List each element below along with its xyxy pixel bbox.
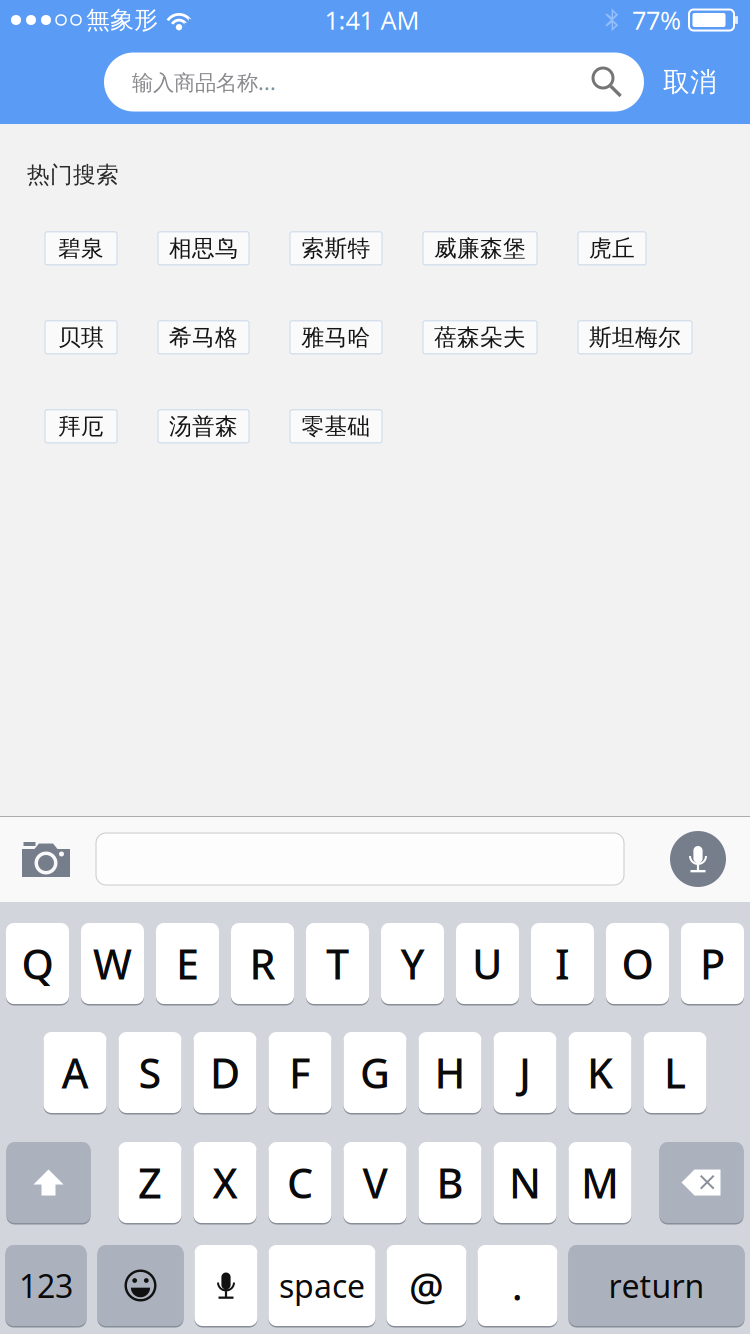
staticText: E bbox=[176, 936, 199, 991]
button[interactable]: 希马格 bbox=[158, 321, 249, 354]
staticText: V bbox=[362, 1155, 387, 1210]
staticText: 输入商品名称... bbox=[132, 68, 276, 96]
button[interactable]: 蓓森朵夫 bbox=[423, 321, 537, 354]
staticText: C bbox=[287, 1155, 313, 1210]
staticText: 虎丘 bbox=[589, 234, 635, 262]
button[interactable]: L bbox=[643, 1032, 706, 1113]
button[interactable]: 雅马哈 bbox=[290, 321, 382, 354]
staticText: U bbox=[472, 936, 503, 991]
staticText: O bbox=[621, 936, 653, 991]
button[interactable]: 零基础 bbox=[290, 410, 382, 443]
button[interactable]: R bbox=[231, 923, 294, 1004]
staticText: B bbox=[436, 1155, 463, 1210]
staticText: 雅马哈 bbox=[301, 323, 370, 351]
button[interactable]: 取消 bbox=[654, 60, 726, 104]
staticText: 贝琪 bbox=[58, 323, 104, 351]
button[interactable]: F bbox=[268, 1032, 331, 1113]
button[interactable]: S bbox=[118, 1032, 181, 1113]
button[interactable]: Y bbox=[381, 923, 444, 1004]
staticText: D bbox=[210, 1045, 240, 1100]
staticText: 相思鸟 bbox=[169, 234, 238, 262]
button[interactable]: Shift bbox=[6, 1142, 90, 1223]
button[interactable]: U bbox=[456, 923, 519, 1004]
staticText: 汤普森 bbox=[169, 412, 238, 440]
staticText: . bbox=[512, 1260, 523, 1311]
button[interactable]: V bbox=[343, 1142, 406, 1223]
button[interactable]: W bbox=[81, 923, 144, 1004]
staticText: M bbox=[581, 1155, 619, 1210]
button[interactable]: Delete bbox=[659, 1142, 743, 1223]
staticText: 無象形 bbox=[86, 5, 158, 35]
button[interactable]: Camera bbox=[20, 839, 72, 879]
button[interactable]: P bbox=[681, 923, 744, 1004]
staticText: 拜厄 bbox=[58, 412, 104, 440]
button[interactable]: 123 bbox=[5, 1245, 86, 1326]
staticText: R bbox=[249, 936, 275, 991]
button[interactable]: G bbox=[343, 1032, 406, 1113]
staticText: L bbox=[664, 1045, 686, 1100]
staticText: I bbox=[555, 936, 570, 991]
staticText: 取消 bbox=[663, 66, 717, 98]
button[interactable]: 碧泉 bbox=[45, 232, 117, 265]
staticText: A bbox=[61, 1045, 88, 1100]
staticText: W bbox=[93, 936, 132, 991]
button[interactable]: Dictation bbox=[194, 1245, 257, 1326]
staticText: Z bbox=[138, 1155, 162, 1210]
button[interactable]: E bbox=[156, 923, 219, 1004]
button[interactable]: 威廉森堡 bbox=[423, 232, 537, 265]
button[interactable]: Z bbox=[118, 1142, 181, 1223]
staticText: P bbox=[700, 936, 725, 991]
button[interactable]: 输入商品名称... bbox=[104, 52, 644, 111]
button[interactable]: @ bbox=[386, 1245, 466, 1326]
button[interactable]: 相思鸟 bbox=[158, 232, 249, 265]
staticText: X bbox=[212, 1155, 237, 1210]
button[interactable]: N bbox=[493, 1142, 556, 1223]
button[interactable]: 索斯特 bbox=[290, 232, 382, 265]
button[interactable]: O bbox=[606, 923, 669, 1004]
staticText: 碧泉 bbox=[58, 234, 104, 262]
button[interactable]: 汤普森 bbox=[158, 410, 249, 443]
staticText: space bbox=[279, 1264, 365, 1307]
button[interactable]: M bbox=[568, 1142, 631, 1223]
button[interactable]: J bbox=[493, 1032, 556, 1113]
button[interactable]: return bbox=[568, 1245, 744, 1326]
staticText: 77% bbox=[632, 3, 681, 37]
staticText: S bbox=[138, 1045, 161, 1100]
staticText: Y bbox=[400, 936, 424, 991]
button[interactable]: Q bbox=[6, 923, 69, 1004]
staticText: 零基础 bbox=[301, 412, 370, 440]
button[interactable]: 虎丘 bbox=[578, 232, 646, 265]
staticText: F bbox=[289, 1045, 311, 1100]
button[interactable]: B bbox=[418, 1142, 481, 1223]
button[interactable]: . bbox=[477, 1245, 557, 1326]
button[interactable]: 贝琪 bbox=[45, 321, 117, 354]
staticText: G bbox=[360, 1045, 390, 1100]
staticText: H bbox=[434, 1045, 465, 1100]
button[interactable]: D bbox=[193, 1032, 256, 1113]
staticText: 威廉森堡 bbox=[434, 234, 526, 262]
staticText: return bbox=[608, 1264, 704, 1307]
button[interactable]: Voice input bbox=[670, 831, 726, 887]
staticText: 123 bbox=[19, 1264, 73, 1307]
button[interactable]: Emoji bbox=[97, 1245, 183, 1326]
staticText: Q bbox=[21, 936, 53, 991]
staticText: K bbox=[587, 1045, 613, 1100]
button[interactable]: A bbox=[43, 1032, 106, 1113]
staticText: 1:41 AM bbox=[324, 3, 419, 37]
button[interactable]: 斯坦梅尔 bbox=[578, 321, 692, 354]
button[interactable]: C bbox=[268, 1142, 331, 1223]
button[interactable]: X bbox=[193, 1142, 256, 1223]
staticText: @ bbox=[409, 1260, 444, 1311]
staticText: 斯坦梅尔 bbox=[589, 323, 681, 351]
staticText: J bbox=[519, 1045, 531, 1100]
staticText: 希马格 bbox=[169, 323, 238, 351]
button[interactable]: space bbox=[268, 1245, 375, 1326]
button[interactable]: I bbox=[531, 923, 594, 1004]
staticText: N bbox=[509, 1155, 541, 1210]
button[interactable]: K bbox=[568, 1032, 631, 1113]
button[interactable]: T bbox=[306, 923, 369, 1004]
button[interactable]: H bbox=[418, 1032, 481, 1113]
button[interactable]: 拜厄 bbox=[45, 410, 117, 443]
staticText: 蓓森朵夫 bbox=[434, 323, 526, 351]
staticText: 索斯特 bbox=[301, 234, 370, 262]
